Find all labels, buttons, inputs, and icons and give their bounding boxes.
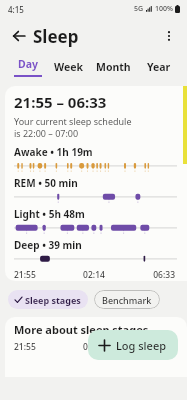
staticText: 21:55: [14, 269, 67, 281]
button[interactable]: Day: [10, 54, 46, 80]
button[interactable]: Month: [91, 54, 136, 80]
staticText: 06:33: [121, 269, 175, 281]
button[interactable]: Benchmark: [94, 290, 160, 309]
staticText: 06:33: [121, 341, 175, 353]
staticText: 21:55: [14, 341, 67, 353]
staticText: More about sleep stages: [14, 322, 149, 337]
staticText: Your current sleep schedule: [14, 115, 132, 127]
staticText: 02:14: [67, 341, 121, 353]
button[interactable]: More options: [157, 24, 181, 48]
button[interactable]: Back: [6, 23, 32, 49]
staticText: Week: [54, 60, 83, 74]
staticText: Light • 5h 48m: [14, 207, 85, 221]
staticText: 5G: [134, 4, 144, 14]
staticText: REM • 50 min: [14, 176, 78, 190]
staticText: Year: [147, 60, 171, 74]
staticText: Sleep: [33, 25, 79, 48]
button[interactable]: Sleep stages: [8, 290, 88, 309]
staticText: is 22:00 – 07:00: [14, 127, 79, 139]
button[interactable]: Year: [136, 54, 181, 80]
staticText: 4:15: [8, 4, 24, 15]
staticText: Sleep stages: [25, 294, 81, 306]
button[interactable]: Week: [46, 54, 91, 80]
staticText: Month: [96, 60, 131, 74]
button[interactable]: More about sleep stages: [5, 317, 187, 377]
button[interactable]: Log sleep: [88, 330, 178, 360]
staticText: Awake • 1h 19m: [14, 145, 93, 159]
staticText: 02:14: [67, 269, 121, 281]
staticText: Benchmark: [102, 294, 152, 306]
staticText: 100%: [155, 4, 173, 14]
staticText: Deep • 39 min: [14, 238, 82, 252]
button[interactable]: 21:55 – 06:33: [5, 86, 187, 281]
staticText: Day: [18, 57, 38, 71]
staticText: Log sleep: [116, 338, 167, 353]
staticText: 21:55 – 06:33: [14, 92, 107, 112]
